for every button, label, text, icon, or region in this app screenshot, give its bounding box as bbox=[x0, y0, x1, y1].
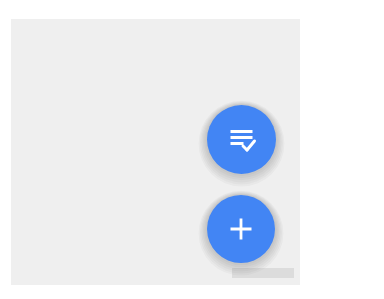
button[interactable]: Mark all done bbox=[207, 105, 276, 174]
button[interactable]: Add bbox=[207, 195, 275, 263]
